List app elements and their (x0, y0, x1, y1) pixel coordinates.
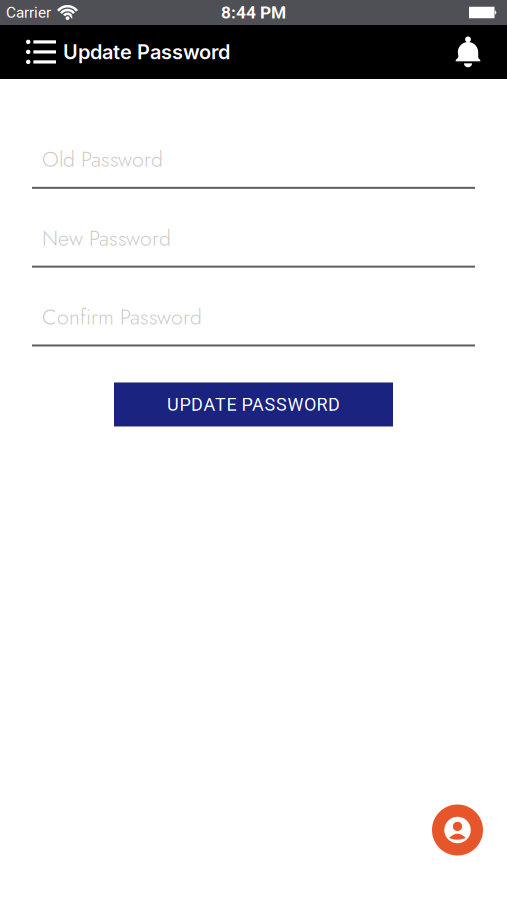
staticText: 8:44 PM (221, 2, 286, 23)
button[interactable]: Profile (432, 804, 483, 855)
button[interactable]: UPDATE PASSWORD (114, 382, 393, 426)
staticText: Update Password (63, 40, 230, 64)
staticText: Confirm Password (42, 302, 202, 332)
staticText: UPDATE PASSWORD (167, 394, 340, 415)
button[interactable]: Menu (0, 39, 63, 64)
staticText: Old Password (42, 144, 163, 175)
staticText: New Password (42, 223, 171, 254)
button[interactable]: Notifications (455, 36, 507, 68)
staticText: Carrier (6, 3, 51, 21)
